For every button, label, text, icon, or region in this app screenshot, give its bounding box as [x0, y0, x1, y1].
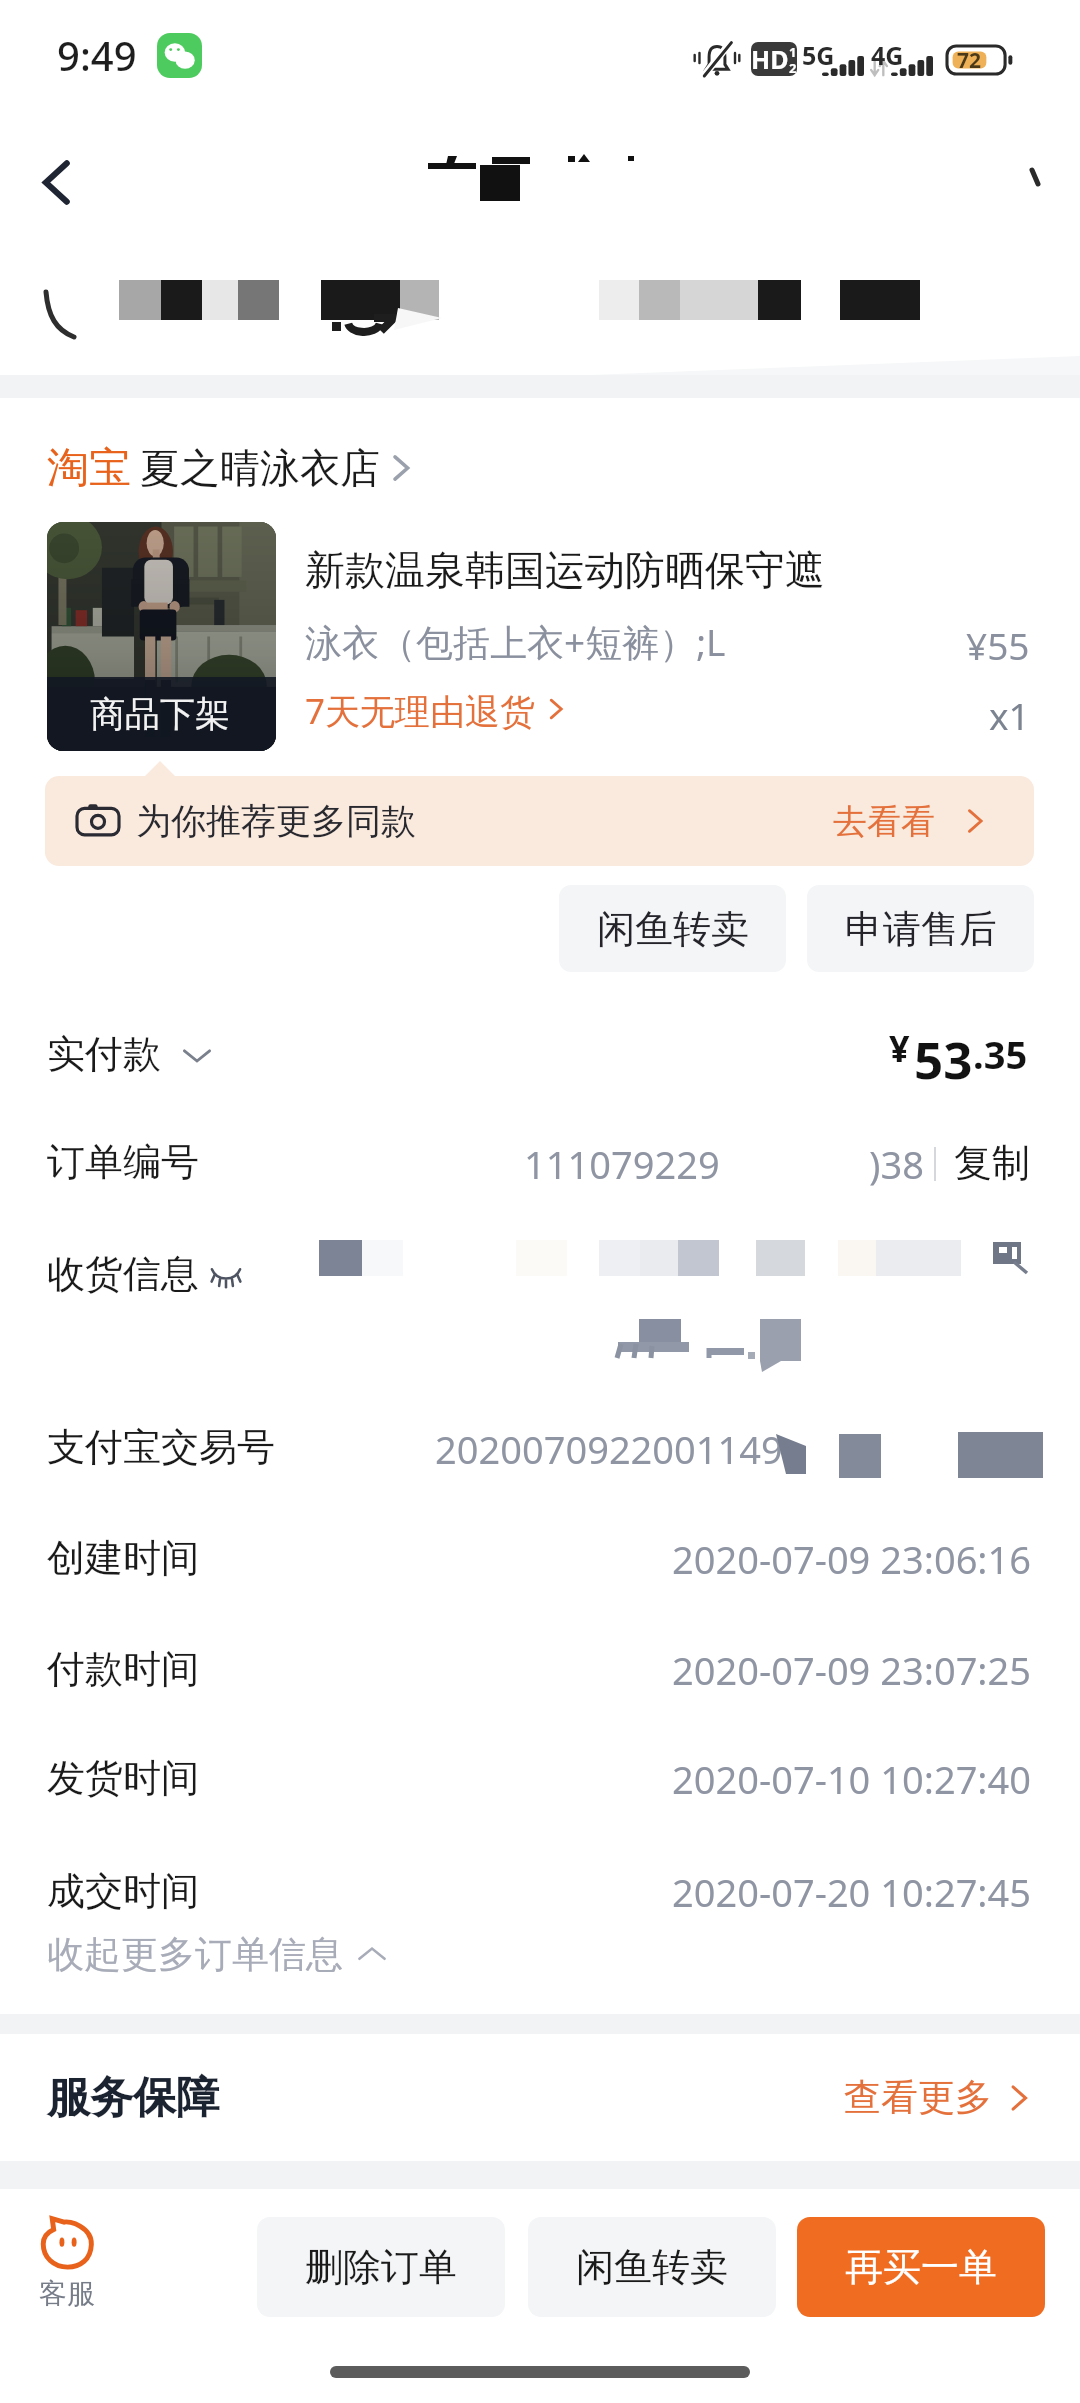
staticText: 客服 [39, 2276, 95, 2311]
staticText: 支付宝交易号 [47, 1423, 275, 1471]
staticText: 夏之晴泳衣店 [140, 443, 380, 493]
staticText: 72 [957, 46, 982, 74]
staticText: 删除订单 [305, 2243, 457, 2291]
button[interactable]: 客服 [38, 2212, 96, 2311]
button[interactable]: 为你推荐更多同款 [45, 776, 1034, 866]
staticText: 再买一单 [845, 2243, 997, 2291]
staticText: 订单编号 [47, 1138, 199, 1186]
staticText: 收货信息 [47, 1250, 199, 1298]
staticText: 2020-07-09 23:06:16 [672, 1533, 1032, 1585]
staticText: 2020070922001149 [435, 1423, 783, 1475]
button[interactable]: 闲鱼转卖 [528, 2217, 776, 2317]
button[interactable]: Expand payment details [180, 1038, 214, 1072]
button[interactable]: 新款温泉韩国运动防晒保守遮 [295, 540, 1080, 600]
staticText: 复制 [954, 1139, 1030, 1187]
staticText: 2 [789, 59, 797, 75]
staticText: 新款温泉韩国运动防晒保守遮 [305, 545, 825, 595]
staticText: 创建时间 [47, 1534, 199, 1582]
staticText: 收起更多订单信息 [47, 1931, 343, 1978]
staticText: 2020-07-10 10:27:40 [672, 1753, 1032, 1805]
staticText: 去看看 [833, 800, 935, 843]
staticText: 商品下架 [90, 692, 230, 736]
button[interactable]: Product photo, item delisted [47, 522, 276, 751]
staticText: 9:49 [57, 28, 137, 82]
staticText: 2020-07-09 23:07:25 [672, 1644, 1032, 1696]
button[interactable]: 申请售后 [807, 885, 1034, 972]
staticText: 4G [871, 38, 904, 72]
staticText: 111079229 [524, 1138, 720, 1190]
button[interactable]: 闲鱼转卖 [559, 885, 786, 972]
button[interactable]: Back [16, 142, 96, 222]
staticText: 发货时间 [47, 1754, 199, 1802]
staticText: 查看更多 [844, 2074, 992, 2121]
staticText: 实付款 [47, 1030, 161, 1078]
staticText: 为你推荐更多同款 [136, 799, 416, 843]
staticText: .35 [973, 1028, 1028, 1080]
button[interactable]: 复制 [954, 1128, 1030, 1198]
staticText: 闲鱼转卖 [576, 2243, 728, 2291]
staticText: 闲鱼转卖 [597, 905, 749, 953]
staticText: 2020-07-20 10:27:45 [672, 1866, 1032, 1918]
button[interactable]: 服务保障 [0, 2034, 1080, 2161]
button[interactable]: 淘宝 [0, 416, 1080, 520]
button[interactable]: 收起更多订单信息 [47, 1928, 387, 1980]
staticText: 1 [789, 43, 797, 61]
staticText: 申请售后 [845, 905, 997, 953]
staticText: 淘宝 [47, 442, 131, 495]
staticText: x1 [989, 690, 1030, 730]
staticText: 服务保障 [47, 2071, 219, 2125]
staticText: 成交时间 [47, 1867, 199, 1915]
staticText: HD [751, 42, 789, 76]
button[interactable]: 再买一单 [797, 2217, 1045, 2317]
staticText: ¥55 [966, 620, 1030, 660]
staticText: 付款时间 [47, 1645, 199, 1693]
staticText: 7天无理由退货 [305, 687, 536, 731]
button[interactable]: 7天无理由退货 [305, 687, 568, 731]
button[interactable]: 删除订单 [257, 2217, 505, 2317]
staticText: ¥ [889, 1024, 910, 1073]
staticText: 53 [914, 1024, 973, 1084]
staticText: 5G [802, 38, 835, 72]
staticText: 泳衣（包括上衣+短裤）;L [305, 616, 726, 667]
staticText: )38 [869, 1138, 924, 1190]
